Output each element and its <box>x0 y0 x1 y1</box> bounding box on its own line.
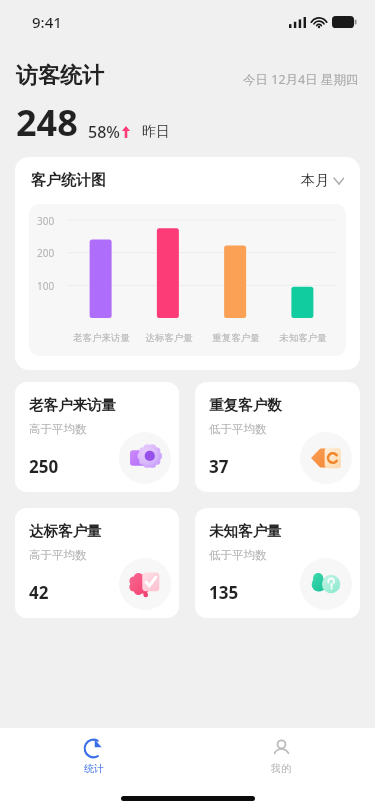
staticText: 客户统计图 <box>31 171 106 190</box>
staticText: 本月 <box>301 172 329 190</box>
staticText: 统计 <box>84 762 104 775</box>
staticText: 今日 12月4日 星期四 <box>243 71 359 88</box>
staticText: 未知客户量 <box>279 332 327 344</box>
button[interactable]: 达标客户量 <box>15 508 179 618</box>
button[interactable]: 老客户来访量 <box>15 382 179 492</box>
staticText: 100 <box>37 279 55 293</box>
other: 我的 <box>271 738 292 759</box>
staticText: 200 <box>37 246 55 260</box>
staticText: 高于平均数 <box>29 548 87 562</box>
button[interactable]: 重复客户数 <box>195 382 360 492</box>
staticText: 低于平均数 <box>209 422 267 436</box>
staticText: 300 <box>37 214 55 228</box>
staticText: 达标客户量 <box>29 522 102 540</box>
staticText: 老客户来访量 <box>29 396 116 414</box>
staticText: 135 <box>209 581 239 604</box>
staticText: 42 <box>29 581 49 604</box>
staticText: 9:41 <box>32 12 62 32</box>
button[interactable]: 客户统计图 <box>15 157 360 370</box>
button[interactable]: 我的 <box>187 728 375 784</box>
staticText: 58% <box>88 121 120 143</box>
staticText: 250 <box>29 455 59 478</box>
staticText: 高于平均数 <box>29 422 87 436</box>
staticText: 248 <box>16 98 78 147</box>
other: 统计 <box>83 738 104 759</box>
button[interactable]: 未知客户量 <box>195 508 360 618</box>
button[interactable]: 本月 <box>301 172 344 190</box>
staticText: 我的 <box>271 762 291 775</box>
staticText: 未知客户量 <box>209 522 282 540</box>
staticText: 达标客户量 <box>145 332 193 344</box>
staticText: 老客户来访量 <box>73 332 130 344</box>
staticText: 重复客户量 <box>212 332 260 344</box>
staticText: 低于平均数 <box>209 548 267 562</box>
staticText: 昨日 <box>142 123 170 141</box>
staticText: 37 <box>209 455 229 478</box>
staticText: 访客统计 <box>16 62 104 90</box>
button[interactable]: 统计 <box>0 728 187 784</box>
staticText: 重复客户数 <box>209 396 282 414</box>
